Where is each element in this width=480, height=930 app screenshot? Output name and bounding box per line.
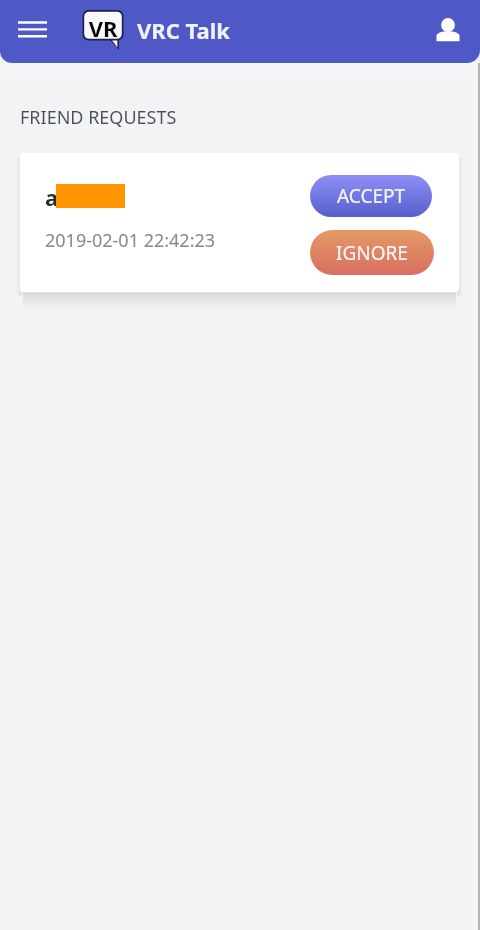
staticText: a — [45, 182, 59, 212]
button[interactable]: Open navigation menu — [8, 13, 57, 49]
staticText: VRC Talk — [137, 15, 230, 45]
staticText: IGNORE — [336, 240, 408, 266]
button[interactable]: Account — [428, 10, 468, 52]
staticText: VR — [82, 13, 124, 43]
staticText: FRIEND REQUESTS — [20, 105, 177, 130]
button[interactable]: ACCEPT — [310, 175, 432, 217]
button[interactable]: IGNORE — [310, 230, 434, 275]
staticText: ACCEPT — [337, 183, 406, 209]
staticText: 2019-02-01 22:42:23 — [45, 228, 216, 253]
